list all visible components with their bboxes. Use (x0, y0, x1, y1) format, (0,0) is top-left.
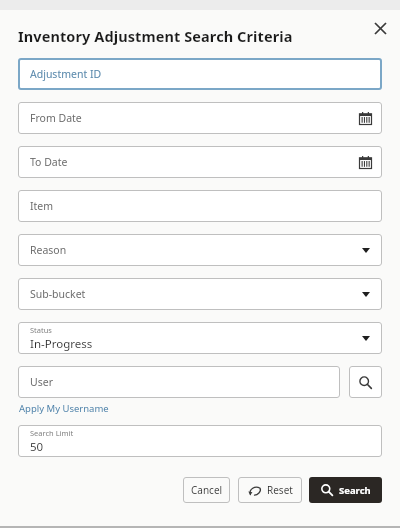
button[interactable]: Status (18, 322, 382, 354)
button[interactable]: Item (18, 190, 382, 222)
staticText: Apply My Username (19, 402, 109, 415)
button[interactable]: From Date (18, 102, 382, 134)
staticText: Reset (267, 483, 293, 497)
button[interactable]: Sub-bucket (18, 278, 382, 310)
staticText: Reason (30, 243, 67, 257)
staticText: Inventory Adjustment Search Criteria (18, 26, 293, 46)
button[interactable]: Close (366, 14, 394, 42)
staticText: User (30, 375, 53, 389)
button[interactable]: Apply My Username (18, 401, 110, 416)
staticText: Search (339, 484, 371, 497)
staticText: Search Limit (30, 428, 74, 438)
staticText: Cancel (191, 483, 223, 497)
button[interactable]: Reason (18, 234, 382, 266)
button[interactable]: Search user (349, 366, 382, 398)
button[interactable]: User (18, 366, 340, 398)
staticText: Adjustment ID (30, 67, 102, 81)
button[interactable]: Search Limit (18, 425, 382, 457)
button[interactable]: Reset (238, 477, 302, 503)
button[interactable]: Cancel (183, 477, 230, 503)
staticText: Item (30, 199, 54, 213)
button[interactable]: Search (309, 477, 382, 503)
staticText: To Date (30, 155, 68, 169)
button[interactable]: Adjustment ID (18, 58, 382, 90)
staticText: Status (30, 325, 52, 335)
staticText: From Date (30, 111, 82, 125)
staticText: Sub-bucket (30, 287, 86, 301)
staticText: 50 (30, 439, 44, 455)
button[interactable]: To Date (18, 146, 382, 178)
staticText: In-Progress (30, 336, 93, 352)
